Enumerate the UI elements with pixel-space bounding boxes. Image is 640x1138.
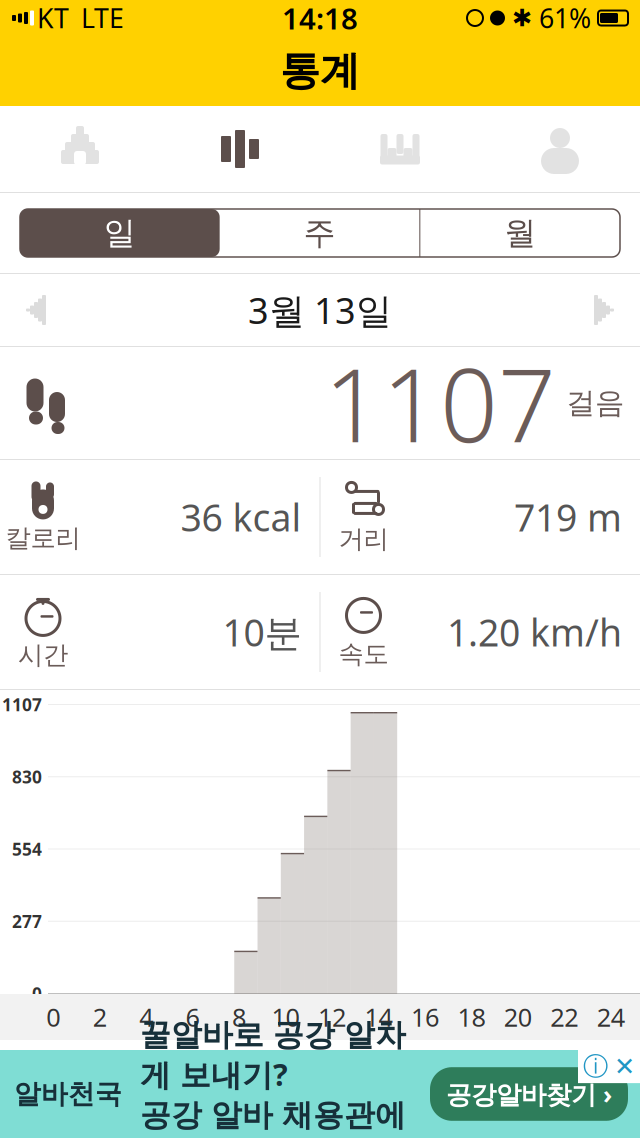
staticText: 1107 — [324, 336, 556, 470]
staticText: 2 — [93, 1000, 107, 1034]
staticText: 719 m — [514, 492, 622, 542]
staticText: LTE — [81, 0, 124, 36]
staticText: 꿀알바로 공강 알차게 보내기? — [140, 1016, 406, 1094]
button[interactable]: 이전 날짜 — [0, 274, 70, 346]
staticText: 0 — [46, 1000, 60, 1034]
staticText: 통계 — [280, 46, 360, 95]
staticText: 알바천국 — [14, 1078, 122, 1110]
staticText: KT — [37, 0, 69, 36]
staticText: 61% — [539, 0, 591, 36]
staticText: 830 — [12, 765, 42, 788]
staticText: 24 — [597, 1000, 625, 1034]
staticText: 일 — [104, 213, 136, 253]
button[interactable]: 월 — [420, 209, 620, 257]
staticText: ⓘ — [583, 1051, 608, 1082]
staticText: 36 kcal — [180, 492, 301, 542]
staticText: ✕ — [614, 1052, 635, 1081]
staticText: 554 — [12, 837, 42, 860]
button[interactable]: 프로필 — [480, 106, 640, 192]
staticText: 칼로리 — [5, 522, 80, 553]
staticText: 0 — [32, 982, 42, 1005]
staticText: 16 — [411, 1000, 439, 1034]
button[interactable]: 일 — [20, 209, 220, 257]
staticText: 20 — [504, 1000, 532, 1034]
staticText: 4 — [139, 1000, 153, 1034]
button[interactable]: 주 — [220, 209, 419, 257]
button[interactable]: 랭킹 — [320, 106, 480, 192]
button[interactable]: 통계 — [160, 106, 320, 192]
staticText: ✱ — [512, 4, 532, 32]
staticText: 10분 — [222, 607, 301, 657]
button[interactable]: 홈 — [0, 106, 160, 192]
staticText: 걸음 — [566, 385, 624, 421]
staticText: 10 — [271, 1000, 299, 1034]
staticText: 18 — [457, 1000, 485, 1034]
staticText: 6 — [186, 1000, 200, 1034]
staticText: 1.20 km/h — [447, 607, 622, 657]
staticText: 1107 — [2, 693, 42, 716]
staticText: 공강 알바 채용관에선 가능해 — [140, 1096, 406, 1138]
staticText: 14 — [364, 1000, 392, 1034]
button[interactable]: 다음 날짜 — [570, 274, 640, 346]
staticText: 3월 13일 — [248, 286, 392, 334]
staticText: 12 — [318, 1000, 346, 1034]
staticText: 14:18 — [282, 0, 358, 37]
staticText: 8 — [232, 1000, 246, 1034]
staticText: 속도 — [338, 638, 388, 669]
staticText: 거리 — [338, 523, 388, 554]
button[interactable]: 알바천국 — [0, 1050, 640, 1138]
staticText: 공강알바찾기 › — [446, 1077, 612, 1111]
staticText: 월 — [504, 213, 536, 253]
staticText: 22 — [550, 1000, 578, 1034]
staticText: 시간 — [18, 639, 68, 670]
staticText: 277 — [12, 910, 42, 933]
staticText: 주 — [303, 213, 335, 253]
